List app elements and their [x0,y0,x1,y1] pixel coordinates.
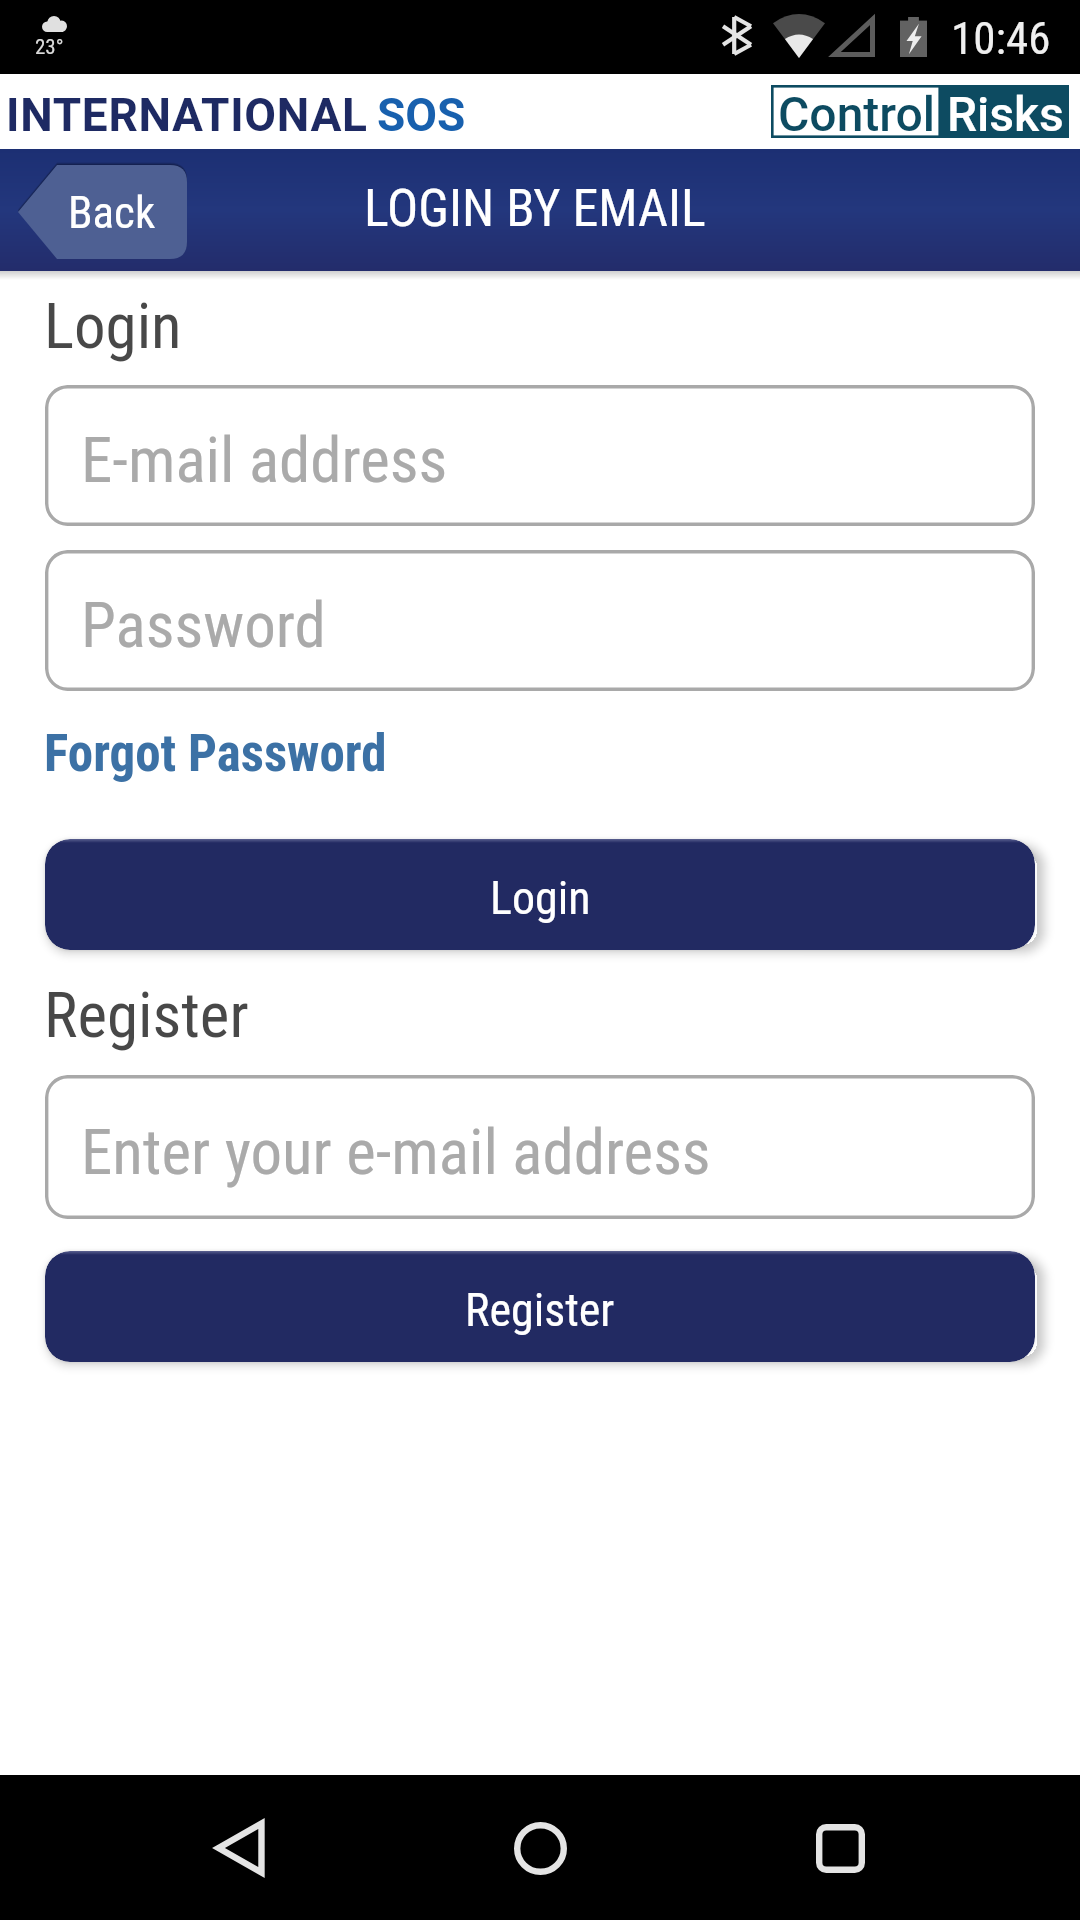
staticText: Login [44,290,182,364]
staticText: 10:46 [951,12,1051,65]
button[interactable]: Password [45,550,1035,691]
button[interactable]: E-mail address [45,385,1035,526]
staticText: Forgot Password [44,724,387,784]
button[interactable]: Register [45,1251,1035,1362]
staticText: Register [44,979,249,1053]
staticText: 23° [35,35,64,60]
staticText: Risks [947,86,1064,139]
staticText: SOS [377,88,466,142]
button[interactable]: Back [194,1802,286,1894]
button[interactable]: Enter your e-mail address [45,1075,1035,1219]
button[interactable]: Forgot Password [44,724,387,784]
staticText: Register [465,1283,615,1337]
staticText: LOGIN BY EMAIL [364,178,706,239]
staticText: Back [68,186,156,239]
button[interactable]: Home [494,1802,586,1894]
button[interactable]: Back [18,165,187,259]
button[interactable]: Recent apps [794,1802,886,1894]
staticText: E-mail address [81,424,448,498]
staticText: Login [490,871,591,925]
staticText: Password [81,589,326,663]
staticText: Control [778,86,935,139]
staticText: Enter your e-mail address [81,1116,711,1190]
staticText: INTERNATIONAL [6,88,368,142]
button[interactable]: Login [45,839,1035,950]
